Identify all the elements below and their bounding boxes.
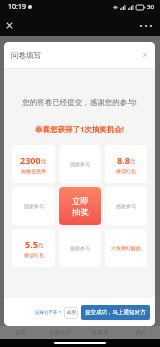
button[interactable]: 六鱼网红酸奶 [105, 229, 147, 267]
staticText: 互助墙 [92, 329, 109, 336]
staticText: 元 [41, 158, 47, 165]
staticText: 首页 [15, 329, 26, 336]
button[interactable]: 感谢参与 [105, 187, 147, 225]
staticText: 30 [147, 3, 154, 11]
staticText: 购物优惠券 [21, 168, 46, 174]
button[interactable]: 2300 [12, 145, 55, 183]
button[interactable]: 关闭 [140, 50, 150, 60]
staticText: 截图 [67, 310, 76, 316]
button[interactable]: 关闭页面 [4, 20, 15, 31]
staticText: 问卷填写 [11, 51, 41, 60]
button[interactable]: 立即 抽奖 [59, 187, 101, 225]
staticText: 10:19 [8, 2, 26, 12]
staticText: 互助大厅 [49, 329, 71, 336]
button[interactable]: 5.5 [12, 229, 55, 267]
staticText: 元 [130, 158, 136, 165]
button[interactable]: 我的 [120, 326, 160, 339]
button[interactable]: 感谢参与 [12, 187, 55, 225]
staticText: 5.5 [25, 238, 38, 250]
staticText: 立即 抽奖 [72, 196, 89, 217]
staticText: 您的答卷已经提交，感谢您的参与! [4, 97, 155, 107]
staticText: 感谢参与 [24, 203, 44, 209]
button[interactable]: 互助大厅 [40, 326, 80, 339]
button[interactable]: 互助墙 [80, 326, 120, 339]
button[interactable]: 感谢参与 [59, 229, 101, 267]
staticText: 微信红包 [116, 168, 136, 174]
staticText: 六鱼网红酸奶 [111, 245, 141, 251]
staticText: 8.8 [117, 154, 130, 166]
button[interactable]: 首页 [0, 326, 40, 339]
staticText: 感谢参与 [70, 161, 90, 167]
staticText: 感谢参与 [70, 245, 90, 251]
staticText: 元 [38, 242, 44, 249]
button[interactable]: 更多 [140, 20, 152, 31]
button[interactable]: 问卷打不开？ [35, 310, 62, 316]
button[interactable]: 提交成功，马上通知对方 [81, 305, 150, 320]
staticText: 我的 [135, 329, 146, 336]
staticText: 恭喜您获得了1次抽奖机会! [4, 124, 155, 134]
staticText: 感谢参与 [116, 203, 136, 209]
button[interactable]: 感谢参与 [59, 145, 101, 183]
staticText: 2300 [20, 154, 41, 166]
staticText: 提交成功，马上通知对方 [85, 309, 146, 316]
staticText: 微信红包 [24, 252, 44, 258]
button[interactable]: 8.8 [105, 145, 147, 183]
button[interactable]: 截图 [64, 307, 78, 319]
